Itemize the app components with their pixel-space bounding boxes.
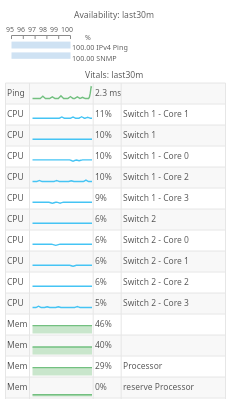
staticText: 0% [95, 381, 107, 393]
button[interactable]: Mem [0, 377, 229, 398]
staticText: Switch 1 [123, 129, 157, 141]
staticText: Vitals: last30m [85, 69, 144, 81]
staticText: Mem [7, 339, 28, 351]
staticText: 99 [50, 25, 59, 35]
staticText: Mem [7, 318, 28, 330]
button[interactable]: CPU [0, 209, 229, 230]
button[interactable]: CPU [0, 188, 229, 209]
staticText: 11% [95, 108, 112, 120]
staticText: 6% [95, 213, 107, 225]
button[interactable]: Mem [0, 335, 229, 356]
staticText: 100 [61, 25, 74, 35]
staticText: CPU [7, 234, 24, 246]
button[interactable]: Ping [0, 83, 229, 104]
staticText: Switch 1 - Core 0 [123, 150, 189, 162]
staticText: Switch 2 [123, 213, 157, 225]
staticText: 5% [95, 297, 107, 309]
staticText: CPU [7, 108, 24, 120]
staticText: CPU [7, 129, 24, 141]
staticText: CPU [7, 150, 24, 162]
staticText: 10% [95, 150, 112, 162]
staticText: CPU [7, 297, 24, 309]
staticText: 95 [6, 25, 15, 35]
staticText: 6% [95, 276, 107, 288]
button[interactable]: CPU [0, 125, 229, 146]
staticText: 9% [95, 192, 107, 204]
button[interactable]: CPU [0, 104, 229, 125]
staticText: Ping [7, 87, 25, 99]
button[interactable]: CPU [0, 272, 229, 293]
staticText: reserve Processor [123, 381, 195, 393]
staticText: Switch 1 - Core 1 [123, 108, 189, 120]
staticText: CPU [7, 192, 24, 204]
staticText: 100.00 IPv4 Ping [72, 42, 128, 52]
staticText: Switch 2 - Core 1 [123, 255, 189, 267]
staticText: 40% [95, 339, 112, 351]
staticText: Mem [7, 381, 28, 393]
staticText: Availability: last30m [74, 9, 155, 21]
staticText: 2.3 ms [95, 87, 122, 99]
button[interactable]: CPU [0, 251, 229, 272]
staticText: 46% [95, 318, 112, 330]
staticText: Switch 1 - Core 2 [123, 171, 189, 183]
staticText: CPU [7, 276, 24, 288]
staticText: CPU [7, 213, 24, 225]
button[interactable]: CPU [0, 293, 229, 314]
button[interactable]: Mem [0, 356, 229, 377]
staticText: 10% [95, 171, 112, 183]
staticText: % [85, 33, 91, 43]
staticText: 6% [95, 234, 107, 246]
button[interactable]: CPU [0, 230, 229, 251]
staticText: CPU [7, 171, 24, 183]
staticText: CPU [7, 255, 24, 267]
staticText: 100.00 SNMP [72, 53, 117, 63]
button[interactable]: CPU [0, 146, 229, 167]
button[interactable]: Mem [0, 314, 229, 335]
staticText: 29% [95, 360, 112, 372]
staticText: Switch 2 - Core 3 [123, 297, 189, 309]
staticText: 97 [28, 25, 37, 35]
staticText: Mem [7, 360, 28, 372]
staticText: Switch 2 - Core 0 [123, 234, 189, 246]
staticText: 98 [39, 25, 48, 35]
staticText: 10% [95, 129, 112, 141]
staticText: 96 [17, 25, 26, 35]
staticText: Processor [123, 360, 163, 372]
button[interactable]: CPU [0, 167, 229, 188]
staticText: Switch 2 - Core 2 [123, 276, 189, 288]
staticText: 6% [95, 255, 107, 267]
staticText: Switch 1 - Core 3 [123, 192, 189, 204]
